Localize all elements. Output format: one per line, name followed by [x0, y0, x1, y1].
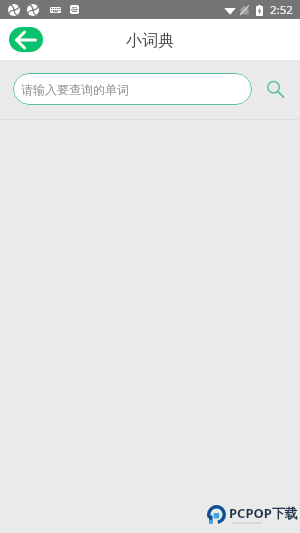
staticText: 小词典: [126, 31, 174, 51]
staticText: 2:52: [270, 2, 293, 18]
button[interactable]: Search: [262, 76, 288, 102]
button[interactable]: Back: [9, 27, 43, 52]
staticText: 请输入要查询的单词: [21, 82, 129, 97]
staticText: PCPOP下载: [229, 504, 298, 522]
staticText: www.pcpop.com: [231, 520, 263, 525]
button[interactable]: 请输入要查询的单词: [13, 73, 252, 105]
